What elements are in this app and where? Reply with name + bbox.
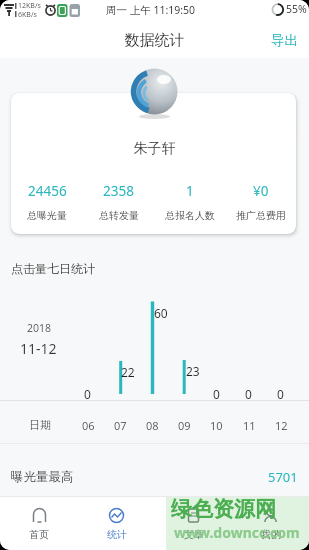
staticText: 文章 (184, 528, 204, 541)
staticText: 日期 (29, 418, 51, 432)
staticText: 55% (286, 2, 307, 16)
staticText: 09 (178, 418, 191, 433)
staticText: 2358 (103, 182, 134, 200)
staticText: 0 (84, 386, 91, 402)
staticText: 07 (114, 418, 127, 433)
staticText: 0 (213, 386, 220, 402)
staticText: 数据统计 (0, 31, 309, 50)
staticText: 周一 上午 11:19:50 (0, 3, 305, 17)
button[interactable]: 我的 (232, 497, 309, 550)
staticText: 5701 (268, 468, 298, 486)
staticText: 22 (121, 364, 135, 380)
staticText: 我的 (261, 528, 281, 541)
staticText: 24456 (28, 182, 67, 200)
staticText: 12KB/s (18, 1, 41, 11)
button[interactable]: 曝光量最高 (11, 468, 298, 486)
staticText: 总转发量 (99, 209, 139, 222)
staticText: 绿色资源网 (171, 496, 276, 522)
staticText: 0 (245, 386, 252, 402)
staticText: 统计 (107, 528, 127, 541)
staticText: 12 (275, 418, 288, 433)
staticText: 总报名人数 (165, 209, 215, 222)
button[interactable]: 24456 (11, 182, 83, 222)
staticText: 首页 (29, 528, 49, 541)
button[interactable]: 1 (154, 182, 225, 222)
button[interactable]: 2358 (83, 182, 154, 222)
staticText: 曝光量最高 (11, 469, 74, 485)
staticText: 点击量七日统计 (11, 261, 95, 276)
staticText: 导出 (271, 32, 298, 49)
staticText: 10 (210, 418, 223, 433)
staticText: 0 (277, 386, 284, 402)
staticText: 06 (82, 418, 95, 433)
button[interactable]: 统计 (78, 497, 155, 550)
staticText: 2018 (27, 321, 52, 335)
staticText: 11 (243, 418, 256, 433)
staticText: ¥0 (253, 182, 269, 200)
button[interactable]: ¥0 (225, 182, 296, 222)
staticText: 总曝光量 (27, 209, 67, 222)
staticText: 23 (186, 363, 200, 379)
button[interactable]: 导出 (271, 32, 298, 49)
staticText: www.downcc.com (174, 523, 300, 542)
staticText: 推广总费用 (236, 209, 286, 222)
staticText: 11-12 (20, 339, 57, 358)
staticText: 1 (186, 182, 194, 200)
staticText: 6KB/s (18, 10, 37, 20)
button[interactable]: 文章 (155, 497, 232, 550)
staticText: 08 (146, 418, 159, 433)
button[interactable]: 首页 (0, 497, 78, 550)
staticText: 60 (154, 305, 168, 321)
staticText: 朱子轩 (0, 140, 309, 158)
